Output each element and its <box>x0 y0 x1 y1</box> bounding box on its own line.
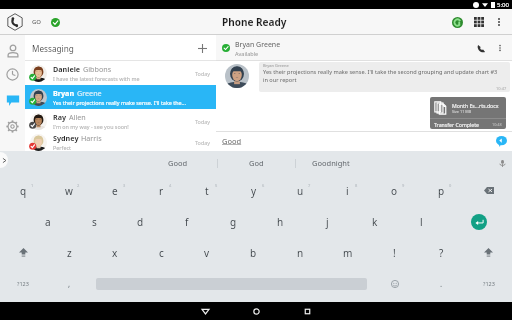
button[interactable]: Call <box>474 41 488 55</box>
staticText: b <box>250 246 257 260</box>
staticText: ? <box>439 246 444 260</box>
staticText: 7 <box>308 183 311 188</box>
button[interactable]: Back <box>190 302 220 320</box>
button[interactable]: Contacts <box>0 39 25 62</box>
staticText: q <box>20 184 27 198</box>
staticText: ! <box>393 246 396 260</box>
button[interactable]: Ray <box>25 109 216 133</box>
button[interactable]: n <box>277 237 324 268</box>
button[interactable]: g <box>210 206 257 237</box>
staticText: Goodnight <box>312 158 350 168</box>
button[interactable]: Daniele <box>25 61 216 85</box>
staticText: p <box>438 184 445 198</box>
button[interactable]: c <box>138 237 184 268</box>
button[interactable]: u <box>277 175 324 206</box>
button[interactable]: a <box>25 206 71 237</box>
button[interactable]: Symbols <box>0 268 46 299</box>
staticText: Greene <box>77 88 102 98</box>
button[interactable]: Good <box>139 151 217 175</box>
button[interactable]: God <box>218 151 294 175</box>
button[interactable]: Enter <box>445 206 512 237</box>
staticText: 3 <box>123 183 126 188</box>
button[interactable]: Bryan <box>25 85 216 109</box>
button[interactable]: ? <box>418 237 465 268</box>
staticText: Month Es...rts.docx <box>452 102 499 109</box>
staticText: Bryan <box>53 88 75 98</box>
button[interactable]: Shift <box>465 237 512 268</box>
staticText: 9 <box>402 183 405 188</box>
button[interactable]: h <box>257 206 304 237</box>
button[interactable]: More options <box>492 15 506 29</box>
button[interactable]: o <box>371 175 418 206</box>
staticText: 4 <box>169 183 172 188</box>
button[interactable]: k <box>351 206 398 237</box>
staticText: Sydney <box>53 133 79 143</box>
staticText: Good <box>168 158 188 168</box>
button[interactable]: Voice input <box>492 151 512 175</box>
button[interactable]: m <box>324 237 371 268</box>
staticText: Today <box>195 70 210 77</box>
button[interactable]: j <box>304 206 351 237</box>
button[interactable]: Messaging <box>0 87 25 113</box>
button[interactable]: x <box>92 237 138 268</box>
button[interactable]: Symbols <box>465 268 512 299</box>
button[interactable]: e <box>92 175 138 206</box>
staticText: 8 <box>355 183 358 188</box>
button[interactable]: New message <box>195 41 209 55</box>
staticText: Perfect <box>53 144 71 151</box>
button[interactable]: Backspace <box>465 175 512 206</box>
button[interactable]: Phone <box>5 12 25 32</box>
staticText: Allen <box>69 112 86 122</box>
button[interactable]: Settings <box>0 113 25 139</box>
button[interactable]: Goodnight <box>296 151 366 175</box>
button[interactable]: d <box>117 206 163 237</box>
button[interactable]: v <box>184 237 230 268</box>
staticText: c <box>159 246 164 260</box>
staticText: n <box>297 246 304 260</box>
button[interactable]: y <box>230 175 277 206</box>
staticText: Available <box>235 50 259 57</box>
button[interactable]: Month Es...rts.docx <box>430 97 506 129</box>
staticText: ?123 <box>17 280 29 287</box>
staticText: Today <box>195 139 210 146</box>
button[interactable]: q <box>0 175 46 206</box>
button[interactable]: Emoji <box>371 268 418 299</box>
button[interactable]: Home <box>241 302 271 320</box>
button[interactable]: Recents <box>0 62 25 87</box>
button[interactable]: Shift <box>0 237 46 268</box>
staticText: 1 <box>31 183 34 188</box>
staticText: v <box>204 246 210 260</box>
button[interactable]: More options <box>494 42 506 54</box>
button[interactable]: z <box>46 237 92 268</box>
button[interactable]: l <box>398 206 445 237</box>
button[interactable]: p <box>418 175 465 206</box>
staticText: GO <box>32 18 42 26</box>
button[interactable]: Recents <box>292 302 322 320</box>
button[interactable]: r <box>138 175 184 206</box>
button[interactable]: Send <box>494 134 508 148</box>
button[interactable]: Sydney <box>25 133 216 151</box>
button[interactable]: b <box>230 237 277 268</box>
button[interactable]: t <box>184 175 230 206</box>
button[interactable]: f <box>163 206 210 237</box>
button[interactable]: Sync <box>449 14 465 30</box>
staticText: g <box>230 215 237 229</box>
button[interactable]: ! <box>371 237 418 268</box>
staticText: ?123 <box>483 280 495 287</box>
button[interactable]: w <box>46 175 92 206</box>
staticText: Good <box>222 136 242 146</box>
button[interactable]: i <box>324 175 371 206</box>
button[interactable]: Apps <box>471 14 487 30</box>
staticText: 0 <box>449 183 452 188</box>
staticText: . <box>440 278 443 289</box>
staticText: 6 <box>262 183 265 188</box>
staticText: y <box>251 184 257 198</box>
button[interactable]: s <box>71 206 117 237</box>
staticText: , <box>68 278 71 289</box>
staticText: x <box>112 246 118 260</box>
staticText: s <box>92 215 97 229</box>
button[interactable]: Expand <box>0 152 8 168</box>
